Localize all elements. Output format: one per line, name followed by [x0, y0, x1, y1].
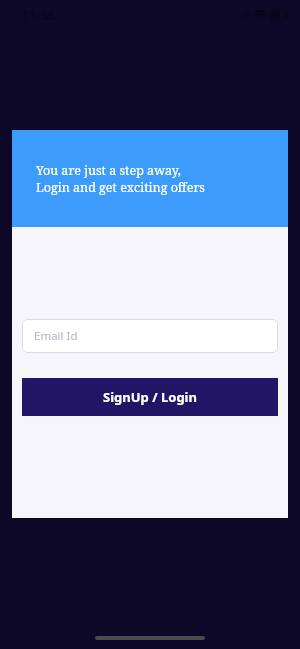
staticText: 11:56: [22, 6, 56, 24]
button[interactable]: Email Id: [22, 319, 278, 353]
staticText: Login and get exciting offers: [36, 179, 205, 196]
staticText: Email Id: [34, 328, 78, 344]
button[interactable]: SignUp / Login: [22, 378, 278, 416]
staticText: SignUp / Login: [103, 388, 197, 406]
staticText: You are just a step away,: [36, 162, 181, 179]
